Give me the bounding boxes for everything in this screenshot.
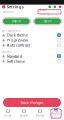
staticText: Profile <box>51 112 60 119</box>
staticText: Save changes <box>20 100 43 105</box>
staticText: Search <box>20 114 28 117</box>
button[interactable]: Soft chime <box>0 59 64 64</box>
staticText: Soft chime <box>7 58 25 64</box>
button[interactable]: Pro preview <box>0 37 64 42</box>
staticText: Account <box>3 10 14 13</box>
button[interactable]: Library <box>32 109 48 118</box>
button[interactable]: Auto contrast <box>0 42 64 47</box>
staticText: Auto contrast <box>7 42 30 48</box>
button[interactable]: Profile <box>48 109 64 118</box>
staticText: APPEARANCE <box>2 29 20 32</box>
staticText: Dark theme <box>7 32 28 38</box>
staticText: Search settings <box>40 8 51 15</box>
button[interactable]: Search settings <box>38 10 61 14</box>
staticText: SOUND <box>2 50 11 53</box>
staticText: Standard <box>7 53 22 59</box>
staticText: Library <box>36 114 44 117</box>
button[interactable]: Standard <box>0 54 64 59</box>
staticText: Import <box>12 19 21 23</box>
button[interactable]: Dark theme <box>0 32 64 37</box>
staticText: Export <box>44 19 52 23</box>
staticText: Home <box>4 114 12 117</box>
staticText: Pro preview <box>7 37 28 43</box>
button[interactable]: Home <box>0 109 16 118</box>
button[interactable]: Export <box>33 18 62 25</box>
button[interactable]: Sync <box>48 5 52 9</box>
button[interactable]: Search <box>16 109 32 118</box>
staticText: Settings <box>7 4 24 9</box>
button[interactable]: Save changes <box>3 98 61 107</box>
button[interactable]: Import <box>2 18 30 25</box>
button[interactable]: Notifications <box>53 5 57 9</box>
button[interactable]: Profile <box>58 5 62 9</box>
